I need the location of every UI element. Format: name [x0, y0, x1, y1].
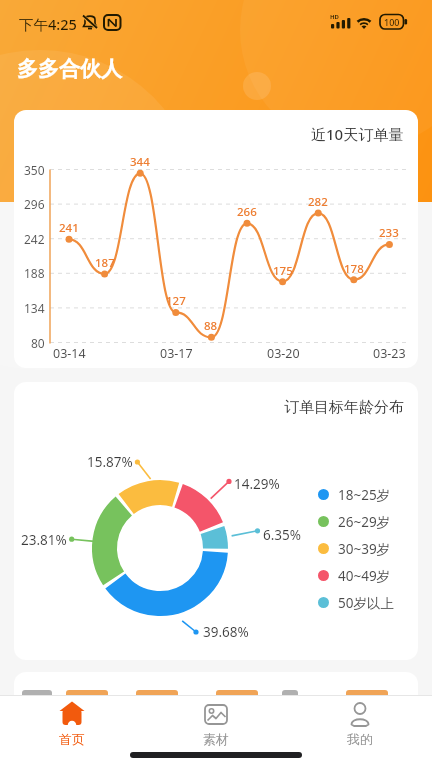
button[interactable]: 近10天订单量 — [14, 110, 418, 368]
staticText: 344 — [130, 154, 150, 170]
staticText: 23.81% — [21, 531, 67, 549]
staticText: 266 — [237, 204, 257, 220]
staticText: 15.87% — [87, 453, 133, 471]
staticText: 242 — [24, 231, 45, 247]
staticText: 127 — [166, 293, 186, 309]
button[interactable]: 订单目标年龄分布 — [14, 382, 418, 660]
staticText: 233 — [379, 225, 399, 241]
staticText: 88 — [204, 318, 218, 334]
staticText: 100 — [384, 16, 400, 28]
button[interactable]: 我的 — [288, 701, 432, 747]
button[interactable]: 50岁以上 — [318, 589, 394, 616]
staticText: 订单目标年龄分布 — [284, 398, 404, 417]
staticText: 我的 — [347, 731, 373, 747]
staticText: 282 — [308, 194, 328, 210]
staticText: 近10天订单量 — [311, 124, 404, 144]
staticText: 首页 — [59, 731, 85, 747]
staticText: 39.68% — [203, 623, 249, 641]
staticText: 6.35% — [263, 526, 302, 544]
staticText: 03-20 — [267, 345, 300, 362]
staticText: 26~29岁 — [338, 513, 391, 531]
staticText: 175 — [273, 263, 293, 279]
staticText: 素材 — [203, 731, 229, 747]
staticText: 350 — [24, 162, 45, 178]
staticText: 241 — [59, 220, 79, 236]
staticText: 03-14 — [53, 345, 86, 362]
staticText: 80 — [31, 335, 45, 351]
staticText: 188 — [24, 265, 45, 281]
staticText: 296 — [24, 196, 45, 212]
staticText: 03-17 — [160, 345, 193, 362]
staticText: 30~39岁 — [338, 540, 391, 558]
button[interactable]: 素材 — [144, 701, 288, 747]
staticText: 134 — [24, 300, 45, 316]
button[interactable]: 40~49岁 — [318, 562, 391, 589]
button[interactable]: 30~39岁 — [318, 535, 391, 562]
button[interactable]: 26~29岁 — [318, 508, 391, 535]
button[interactable]: 18~25岁 — [318, 481, 391, 508]
staticText: 50岁以上 — [338, 594, 394, 612]
staticText: 下午4:25 — [19, 14, 77, 34]
staticText: 40~49岁 — [338, 567, 391, 585]
staticText: 03-23 — [373, 345, 406, 362]
staticText: HD — [330, 13, 339, 21]
staticText: 14.29% — [234, 475, 280, 493]
staticText: 18~25岁 — [338, 486, 391, 504]
staticText: 178 — [344, 261, 364, 277]
staticText: 多多合伙人 — [17, 56, 122, 82]
staticText: 187 — [95, 255, 115, 271]
button[interactable]: 首页 — [0, 701, 144, 747]
